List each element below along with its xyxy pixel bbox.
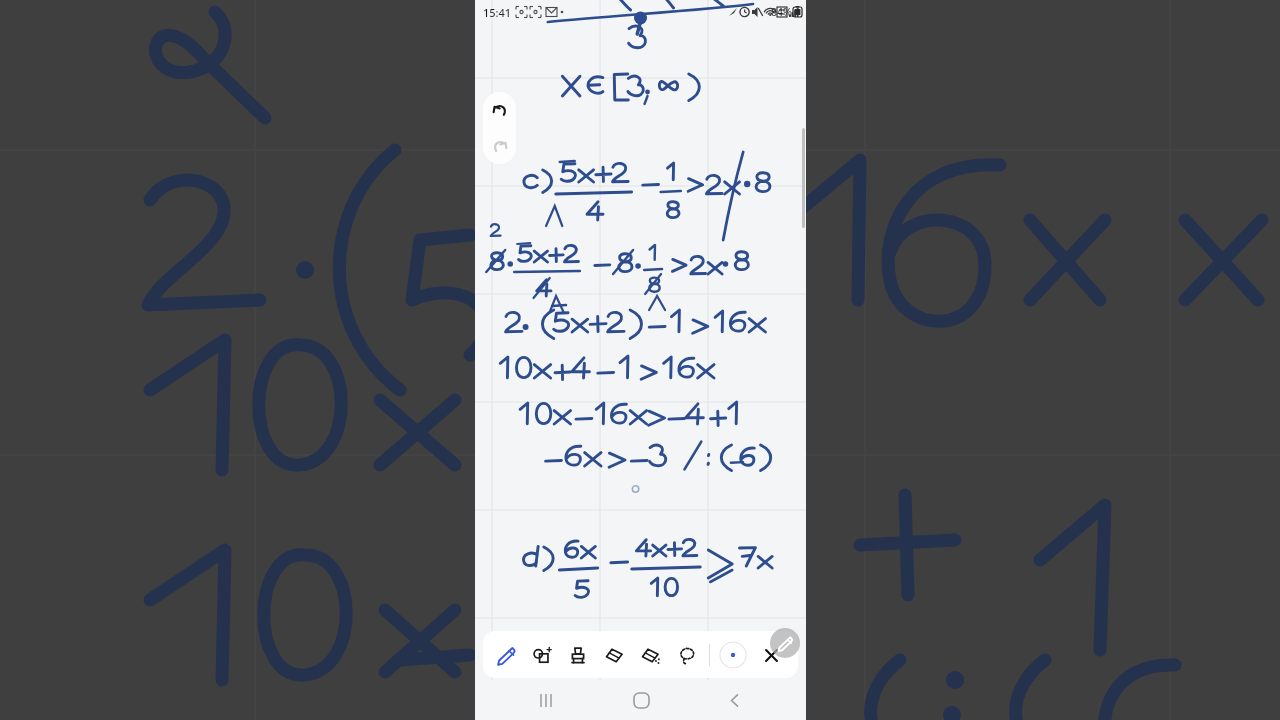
- button[interactable]: Home: [619, 680, 663, 720]
- button[interactable]: Redo: [483, 128, 516, 164]
- button[interactable]: Insert shape: [525, 638, 559, 672]
- staticText: 15:41: [483, 5, 512, 20]
- button[interactable]: Recent apps: [525, 680, 569, 720]
- staticText: 84%: [771, 5, 792, 19]
- button[interactable]: Edit: [770, 628, 800, 658]
- button[interactable]: Close: [754, 638, 788, 672]
- button[interactable]: Pen colour: [718, 640, 748, 670]
- button[interactable]: Lasso select: [669, 638, 703, 672]
- button[interactable]: Pen: [489, 638, 523, 672]
- button[interactable]: Undo: [483, 92, 516, 128]
- button[interactable]: Back: [712, 680, 756, 720]
- button[interactable]: Highlighter: [561, 638, 595, 672]
- button[interactable]: Erase all: [633, 638, 667, 672]
- button[interactable]: Eraser: [597, 638, 631, 672]
